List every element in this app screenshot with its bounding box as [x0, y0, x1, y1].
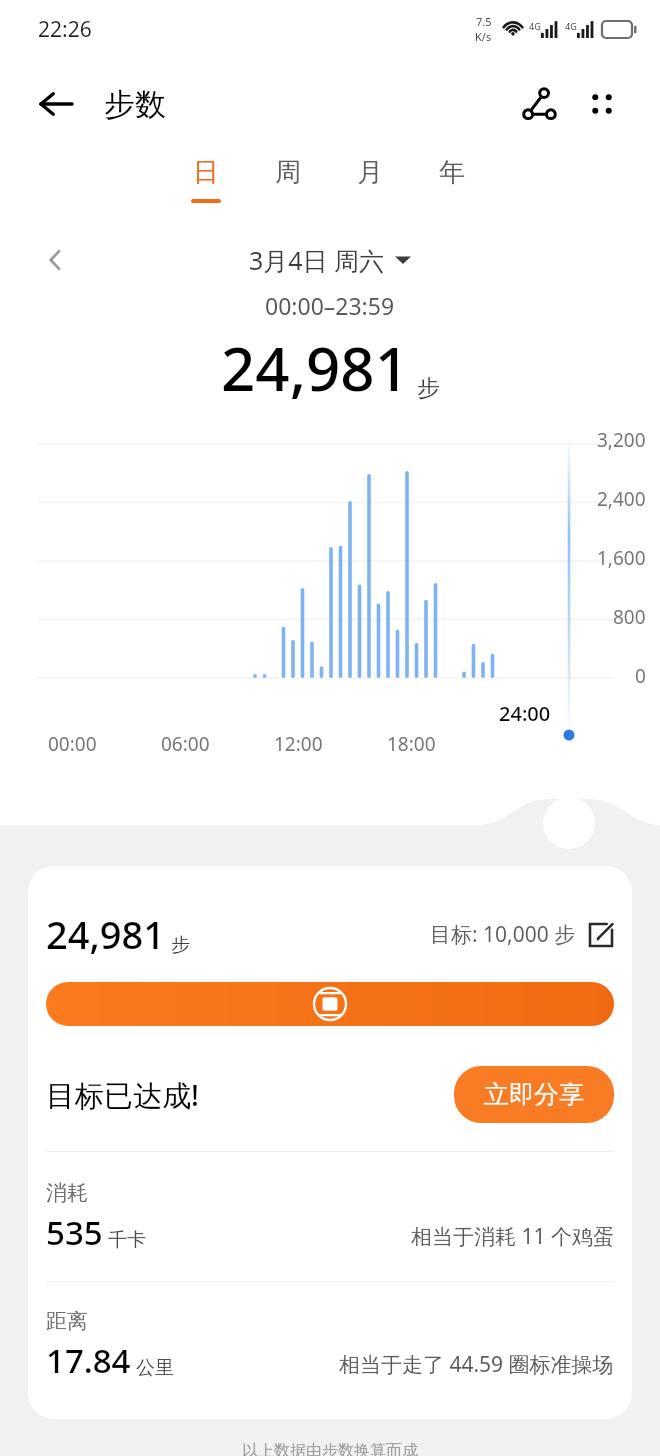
staticText: 00:00	[48, 731, 97, 757]
staticText: 535	[46, 1210, 103, 1255]
staticText: 3,200	[597, 427, 646, 453]
staticText: 24:00	[499, 700, 551, 727]
button[interactable]: 目标: 10,000 步	[430, 920, 614, 949]
staticText: 4G	[565, 20, 577, 32]
staticText: 2,400	[597, 486, 646, 512]
staticText: 年	[439, 156, 465, 189]
staticText: 4G	[529, 20, 541, 32]
button[interactable]: 消耗	[46, 1180, 614, 1255]
staticText: 06:00	[161, 731, 210, 757]
staticText: 18:00	[387, 731, 436, 757]
staticText: 22:26	[38, 15, 92, 44]
staticText: 17.84	[46, 1338, 131, 1383]
staticText: 00:00–23:59	[265, 290, 395, 321]
button[interactable]: 距离	[46, 1308, 614, 1383]
button[interactable]	[46, 982, 614, 1026]
button[interactable]: 分享	[512, 76, 568, 132]
staticText: 立即分享	[484, 1079, 584, 1110]
staticText: 消耗	[46, 1180, 88, 1206]
staticText: 周	[275, 156, 301, 189]
staticText: 7.5	[476, 14, 492, 29]
staticText: 800	[613, 604, 646, 630]
staticText: 目标: 10,000 步	[430, 920, 576, 949]
button[interactable]: 日	[165, 156, 247, 224]
staticText: 日	[193, 156, 219, 189]
staticText: 距离	[46, 1308, 88, 1334]
button[interactable]: 周	[247, 156, 329, 224]
staticText: 24,981	[221, 327, 409, 409]
button[interactable]: 3月4日 周六	[249, 243, 411, 277]
staticText: 3月4日 周六	[249, 243, 385, 277]
staticText: 月	[357, 156, 383, 189]
staticText: 公里	[136, 1356, 174, 1380]
button[interactable]: 更多选项	[574, 76, 630, 132]
button[interactable]: 年	[411, 156, 493, 224]
staticText: 步	[171, 933, 190, 957]
staticText: 步	[417, 374, 440, 403]
staticText: 步数	[104, 85, 166, 124]
staticText: 0	[635, 663, 646, 689]
staticText: 1,600	[597, 545, 646, 571]
staticText: 24,981	[46, 908, 166, 960]
staticText: 以上数据由步数换算而成	[0, 1441, 660, 1456]
button[interactable]: 立即分享	[454, 1066, 614, 1123]
staticText: 千卡	[108, 1228, 146, 1252]
button[interactable]: 月	[329, 156, 411, 224]
staticText: 相当于消耗 11 个鸡蛋	[411, 1222, 614, 1251]
staticText: 相当于走了 44.59 圈标准操场	[339, 1350, 614, 1379]
staticText: 目标已达成!	[46, 1075, 199, 1115]
staticText: K/s	[475, 29, 492, 44]
button[interactable]: 前一天	[34, 238, 78, 282]
button[interactable]: 返回	[28, 76, 84, 132]
staticText: 12:00	[274, 731, 323, 757]
